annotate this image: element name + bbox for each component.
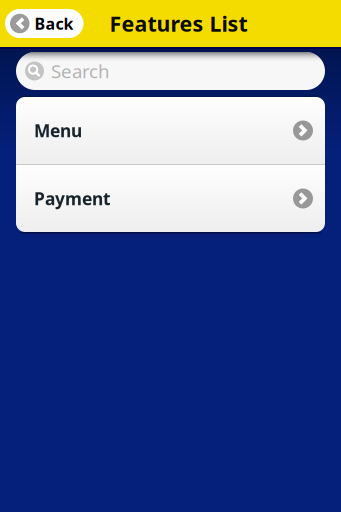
button[interactable]: Payment — [16, 165, 325, 232]
staticText: Menu — [34, 119, 82, 142]
staticText: Features List — [109, 9, 247, 38]
staticText: Back — [34, 13, 73, 34]
button[interactable]: Menu — [16, 97, 325, 164]
button[interactable]: Back — [5, 9, 83, 38]
staticText: Search — [51, 59, 110, 83]
staticText: Payment — [34, 187, 111, 210]
